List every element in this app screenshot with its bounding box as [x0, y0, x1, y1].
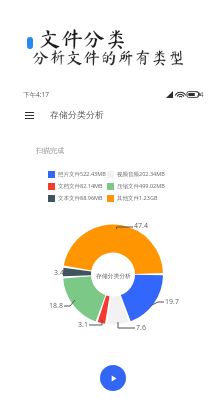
staticText: 压缩文件499.02MB	[117, 182, 165, 190]
staticText: 扫描完成	[36, 146, 64, 155]
button[interactable]: Menu	[22, 108, 36, 122]
staticText: 47.4	[134, 221, 148, 231]
staticText: 18.8	[49, 301, 63, 311]
staticText: 其他文件1.23GB	[117, 194, 158, 202]
staticText: 下午4:17	[23, 90, 49, 99]
staticText: 3.1	[78, 320, 88, 330]
staticText: 照片文件522.43MB	[58, 170, 106, 178]
staticText: 分析文件的所有类型	[32, 49, 185, 66]
staticText: 74	[196, 90, 204, 99]
staticText: 文件分类	[39, 28, 128, 50]
staticText: 存储分类分析	[96, 272, 131, 279]
staticText: 文本文件88.96MB	[58, 194, 103, 202]
button[interactable]: Start scan	[100, 365, 126, 391]
staticText: 文档文件82.14MB	[58, 182, 103, 190]
staticText: 19.7	[165, 297, 179, 307]
staticText: 3.4	[54, 268, 64, 278]
staticText: 7.6	[136, 323, 146, 333]
staticText: 存储分类分析	[50, 109, 104, 120]
staticText: 视频音频202.34MB	[117, 170, 165, 178]
